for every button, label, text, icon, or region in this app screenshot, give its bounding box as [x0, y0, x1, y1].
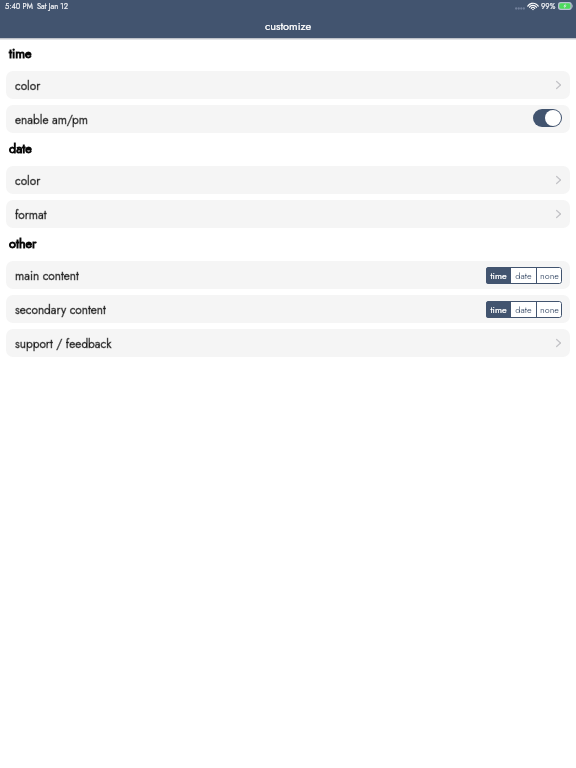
staticText: date	[9, 140, 32, 158]
staticText: color	[15, 77, 41, 94]
other: Open	[554, 207, 561, 221]
staticText: time	[9, 45, 32, 63]
staticText: secondary content	[15, 301, 106, 318]
button[interactable]: Enable am/pm	[533, 109, 562, 127]
staticText: date	[515, 269, 532, 282]
button[interactable]: none	[537, 301, 562, 318]
button[interactable]: date	[511, 301, 536, 318]
staticText: format	[15, 206, 47, 223]
button[interactable]: time	[486, 301, 510, 318]
staticText: color	[15, 77, 41, 94]
staticText: support / feedback	[15, 335, 112, 352]
staticText: other	[9, 235, 37, 253]
staticText: 99%	[541, 1, 556, 12]
staticText: customize	[265, 18, 312, 34]
staticText: 5:40 PM	[5, 1, 33, 12]
staticText: enable am/pm	[15, 111, 89, 128]
staticText: time	[490, 269, 507, 282]
staticText: color	[15, 172, 41, 189]
button[interactable]: support / feedback	[6, 329, 570, 357]
button[interactable]: color	[6, 71, 570, 99]
other: Open	[554, 173, 561, 187]
staticText: enable am/pm	[15, 111, 89, 128]
staticText: none	[540, 269, 559, 282]
staticText: format	[15, 206, 47, 223]
button[interactable]: time	[486, 267, 510, 284]
staticText: main content	[15, 267, 79, 284]
staticText: support / feedback	[15, 335, 112, 352]
button[interactable]: date	[511, 267, 536, 284]
staticText: other	[9, 235, 37, 253]
button[interactable]: main content	[6, 261, 570, 289]
staticText: secondary content	[15, 301, 106, 318]
button[interactable]: secondary content	[6, 295, 570, 323]
staticText: time	[9, 45, 32, 63]
other: Open	[554, 336, 561, 350]
button[interactable]: format	[6, 200, 570, 228]
staticText: date	[515, 303, 532, 316]
staticText: Sat Jan 12	[37, 1, 69, 12]
staticText: time	[490, 303, 507, 316]
staticText: none	[540, 303, 559, 316]
button[interactable]: color	[6, 166, 570, 194]
button[interactable]: enable am/pm	[6, 105, 570, 133]
button[interactable]: none	[537, 267, 562, 284]
other: Open	[554, 78, 561, 92]
staticText: date	[9, 140, 32, 158]
staticText: color	[15, 172, 41, 189]
staticText: main content	[15, 267, 79, 284]
